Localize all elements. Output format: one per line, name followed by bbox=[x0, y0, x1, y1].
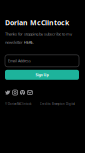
staticText: Thanks for stopping by subscribe to my bbox=[5, 31, 72, 36]
staticText: newsletter bbox=[5, 39, 23, 45]
staticText: HERE. bbox=[24, 39, 34, 45]
staticText: Email Address bbox=[8, 58, 31, 63]
staticText: Credits: Brampton Digital bbox=[40, 102, 75, 106]
button[interactable]: Email bbox=[27, 90, 33, 95]
button[interactable]: Twitter bbox=[5, 90, 10, 95]
staticText: Dorian McClintock bbox=[5, 18, 69, 27]
staticText: © DorianMcClintock bbox=[5, 102, 31, 106]
staticText: Sign Up bbox=[35, 72, 48, 77]
button[interactable]: HERE. bbox=[24, 39, 34, 45]
button[interactable]: Instagram bbox=[12, 90, 18, 95]
button[interactable]: Email Address bbox=[5, 55, 79, 67]
button[interactable]: Sign Up bbox=[5, 70, 79, 80]
button[interactable]: GitHub bbox=[20, 90, 25, 95]
